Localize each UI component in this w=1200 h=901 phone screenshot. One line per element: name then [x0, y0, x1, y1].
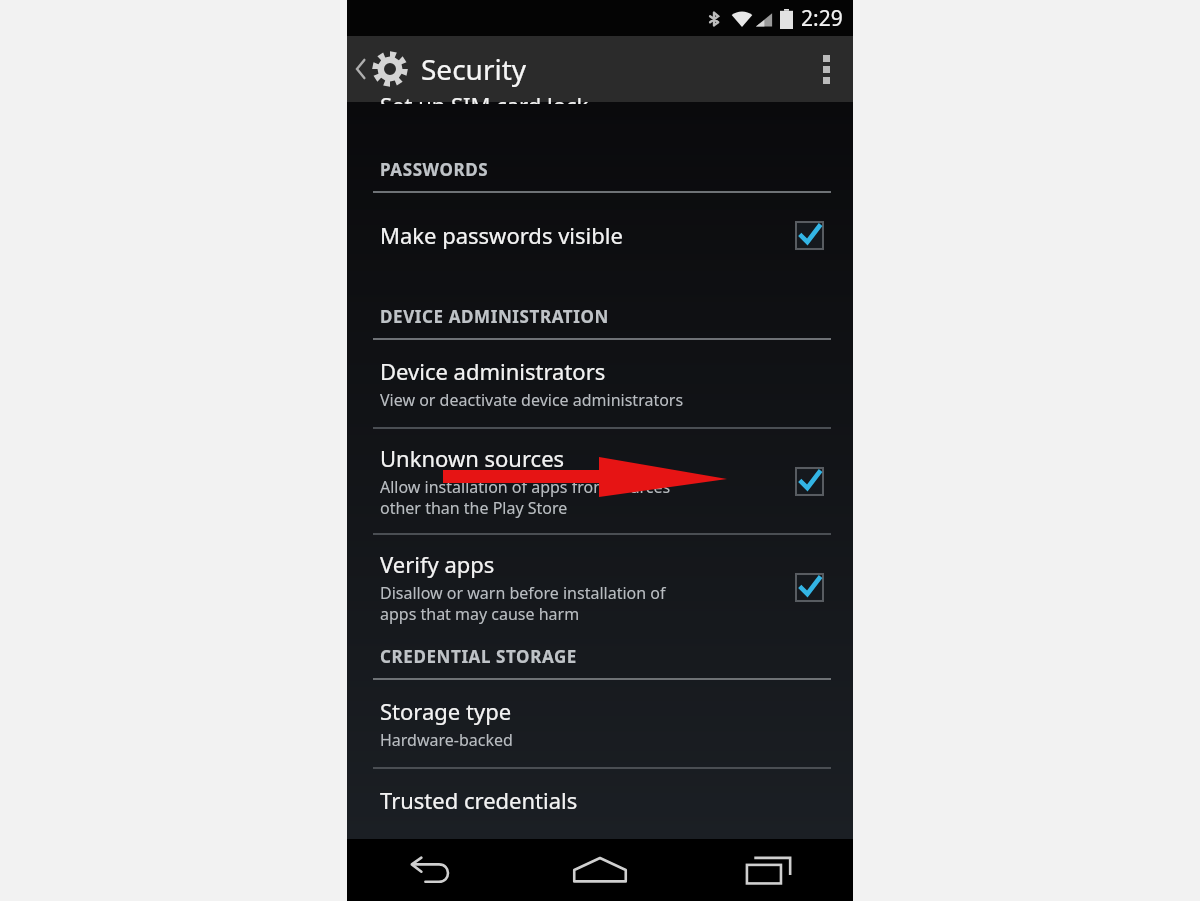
staticText: Device administrators: [380, 356, 606, 386]
staticText: Trusted credentials: [380, 785, 578, 815]
button[interactable]: Verify apps checkbox: [787, 565, 831, 609]
button[interactable]: Storage type: [347, 680, 853, 767]
button[interactable]: Verify apps: [347, 535, 853, 639]
button[interactable]: More options: [799, 36, 853, 102]
button[interactable]: Home: [515, 839, 684, 901]
staticText: Unknown sources: [380, 443, 565, 473]
button[interactable]: Unknown sources: [347, 429, 853, 533]
staticText: Storage type: [380, 696, 512, 726]
staticText: Make passwords visible: [380, 220, 623, 250]
button[interactable]: Unknown sources checkbox: [787, 459, 831, 503]
staticText: Hardware-backed: [380, 729, 513, 751]
staticText: Disallow or warn before installation of …: [380, 582, 666, 625]
staticText: Set up SIM card lock: [380, 90, 589, 104]
button[interactable]: Security: [347, 36, 537, 102]
staticText: 2:29: [801, 4, 843, 33]
button[interactable]: Trusted credentials: [347, 769, 853, 839]
staticText: PASSWORDS: [380, 158, 489, 181]
button[interactable]: Back: [347, 839, 515, 901]
button[interactable]: Make passwords visible: [347, 193, 853, 277]
staticText: Allow installation of apps from sources …: [380, 476, 671, 519]
button[interactable]: Recent apps: [684, 839, 853, 901]
button[interactable]: Device administrators: [347, 340, 853, 427]
staticText: Security: [421, 50, 527, 88]
staticText: View or deactivate device administrators: [380, 389, 684, 411]
staticText: CREDENTIAL STORAGE: [380, 645, 577, 668]
button[interactable]: Set up SIM card lock: [347, 102, 853, 116]
staticText: Verify apps: [380, 549, 495, 579]
staticText: DEVICE ADMINISTRATION: [380, 305, 609, 328]
button[interactable]: Make passwords visible checkbox: [787, 213, 831, 257]
